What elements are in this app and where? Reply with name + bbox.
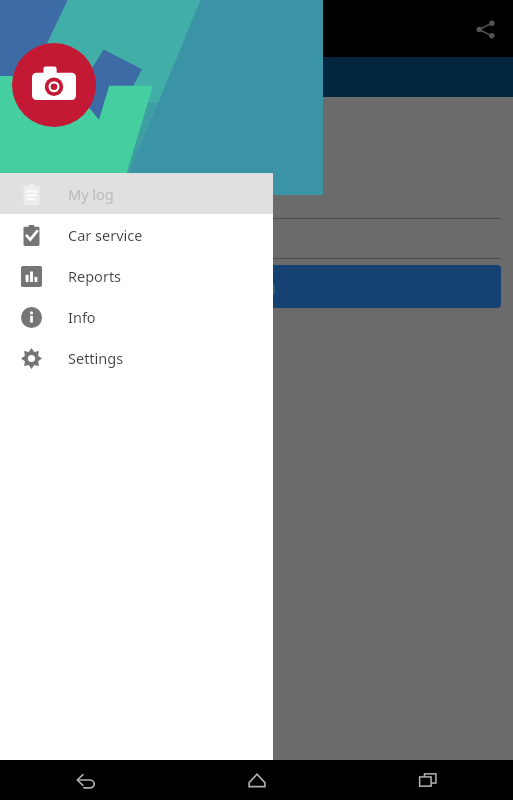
button[interactable]: Car service [0, 214, 273, 255]
staticText: ) [271, 277, 276, 297]
button[interactable]: ) [265, 265, 501, 308]
staticText: Car service [68, 225, 143, 245]
button[interactable]: Info [0, 296, 273, 337]
staticText: Reports [68, 266, 122, 286]
button[interactable]: Recent apps [342, 760, 513, 800]
button[interactable]: Back [0, 760, 171, 800]
button[interactable]: Take photo [12, 43, 96, 127]
button[interactable]: Reports [0, 255, 273, 296]
button[interactable]: My log [0, 173, 273, 214]
staticText: Settings [68, 348, 124, 368]
staticText: My log [68, 184, 114, 204]
button[interactable]: Share [466, 10, 504, 48]
button[interactable]: Home [171, 760, 342, 800]
staticText: Info [68, 307, 96, 327]
button[interactable]: Settings [0, 337, 273, 378]
